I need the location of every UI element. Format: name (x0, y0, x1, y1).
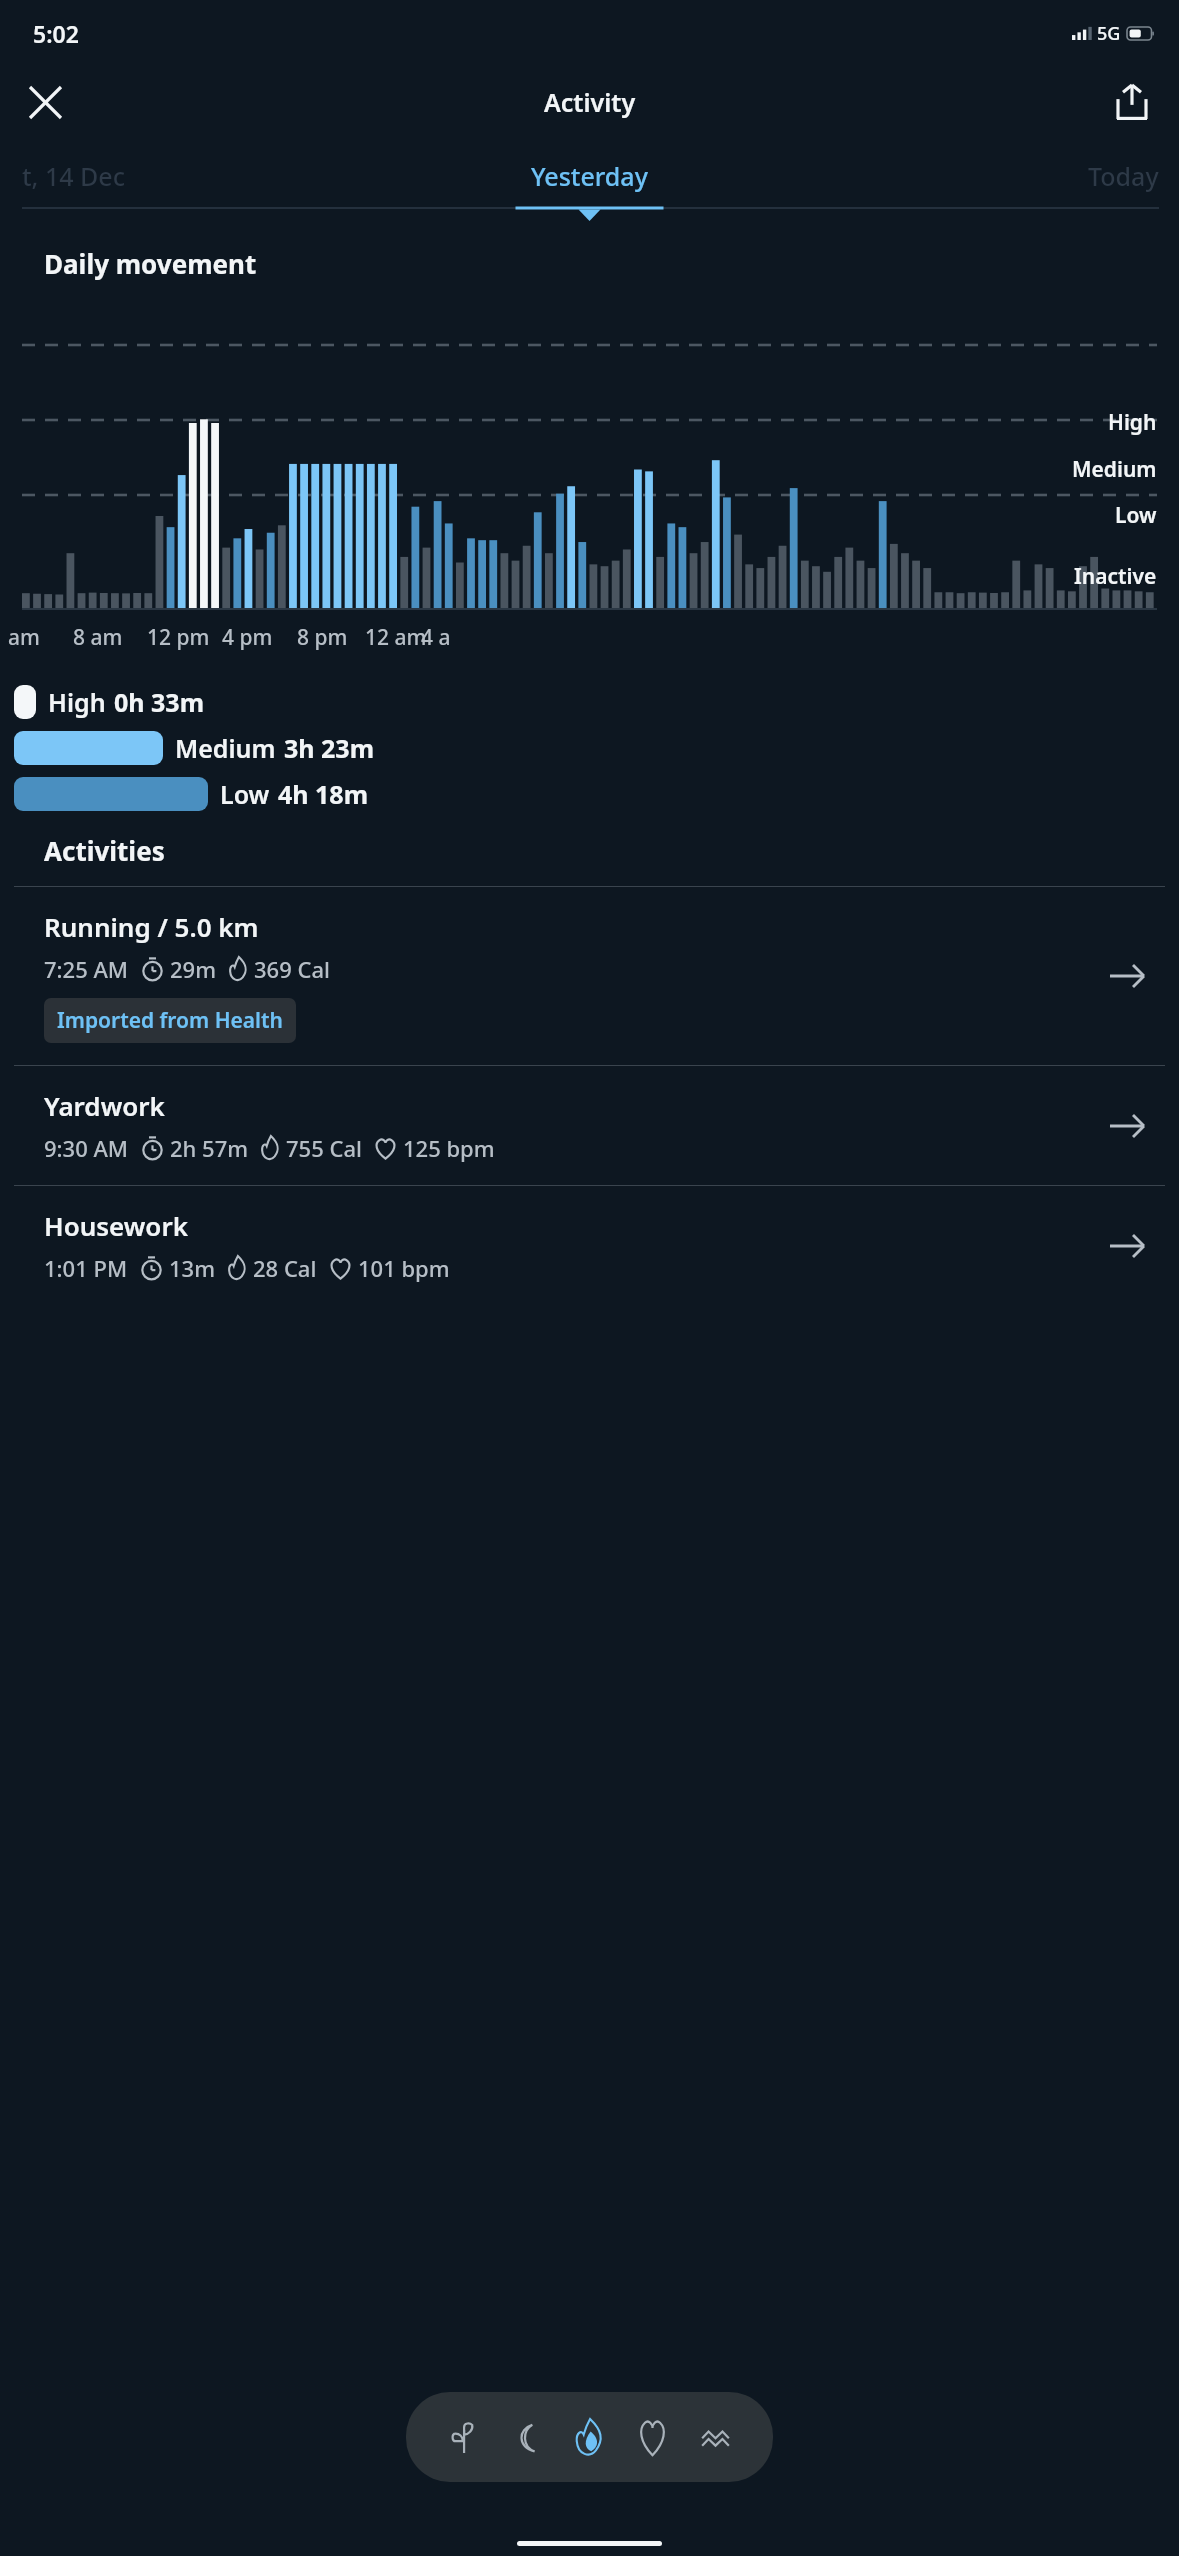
staticText: 9:30 AM (44, 1133, 129, 1163)
button[interactable]: Sleep (495, 2408, 558, 2466)
staticText: High (1108, 408, 1157, 437)
other: Open Yardwork (1105, 1104, 1149, 1148)
staticText: Medium (1072, 455, 1157, 484)
staticText: 0h 33m (114, 685, 205, 719)
staticText: Low (220, 777, 270, 811)
staticText: 755 Cal (286, 1133, 362, 1163)
staticText: am (8, 623, 40, 652)
button[interactable]: Share (1101, 71, 1163, 133)
staticText: Daily movement (44, 246, 257, 281)
staticText: 4 pm (222, 623, 273, 652)
staticText: 5G (1097, 21, 1121, 46)
button[interactable]: Today (1088, 159, 1159, 193)
button[interactable]: Activity (558, 2408, 621, 2466)
button[interactable]: Running / 5.0 km (0, 887, 1179, 1065)
button[interactable]: Yardwork (0, 1066, 1179, 1185)
staticText: 8 am (73, 623, 123, 652)
staticText: 1:01 PM (44, 1253, 128, 1283)
staticText: Medium (175, 731, 276, 765)
button[interactable]: Trends (684, 2408, 747, 2466)
staticText: Housework (44, 1208, 188, 1243)
staticText: 4h 18m (278, 777, 369, 811)
staticText: Running / 5.0 km (44, 909, 259, 944)
staticText: Low (1115, 501, 1157, 530)
button[interactable]: Yesterday (531, 159, 648, 193)
staticText: 369 Cal (254, 954, 330, 984)
staticText: 2h 57m (170, 1133, 249, 1163)
staticText: Activity (544, 85, 636, 119)
staticText: High (48, 685, 106, 719)
staticText: Yardwork (44, 1088, 165, 1123)
staticText: Imported from Health (57, 1006, 283, 1035)
button[interactable]: Sprout (432, 2408, 495, 2466)
staticText: 7:25 AM (44, 954, 129, 984)
other: Open Housework (1105, 1224, 1149, 1268)
staticText: 28 Cal (253, 1253, 317, 1283)
staticText: 125 bpm (403, 1133, 495, 1163)
other: Open Running / 5.0 km (1105, 954, 1149, 998)
staticText: 13m (169, 1253, 216, 1283)
staticText: 12 am (365, 623, 427, 652)
staticText: 101 bpm (358, 1253, 450, 1283)
staticText: 29m (170, 954, 217, 984)
staticText: 5:02 (33, 18, 79, 49)
staticText: 3h 23m (284, 731, 375, 765)
staticText: Inactive (1074, 562, 1157, 591)
button[interactable]: t, 14 Dec (22, 159, 125, 193)
staticText: 4 a (421, 623, 451, 652)
staticText: 12 pm (147, 623, 210, 652)
staticText: 8 pm (297, 623, 348, 652)
staticText: Activities (44, 833, 165, 868)
button[interactable]: Housework (0, 1186, 1179, 1305)
button[interactable]: Heart (621, 2408, 684, 2466)
button[interactable]: Close (14, 71, 76, 133)
